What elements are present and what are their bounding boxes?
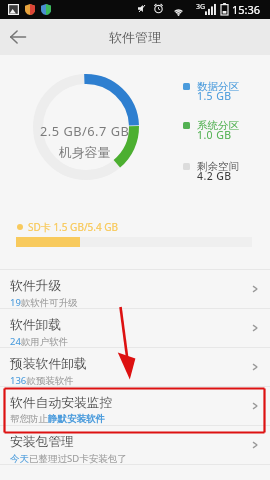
staticText: 软件管理: [109, 29, 161, 45]
button[interactable]: 安装包管理: [0, 426, 270, 464]
staticText: SD卡 1.5 GB/5.4 GB: [28, 220, 119, 234]
staticText: 帮您防止静默安装软件: [10, 413, 105, 425]
button[interactable]: 软件自动安装监控: [0, 387, 270, 425]
staticText: 24款用户软件: [10, 335, 69, 348]
staticText: 今天已整理过SD卡安装包了: [10, 452, 127, 465]
staticText: 剩余空间: [197, 160, 239, 173]
staticText: 2.5 GB/6.7 GB: [40, 122, 130, 139]
button[interactable]: 软件卸载: [0, 309, 270, 347]
staticText: 软件卸载: [10, 317, 62, 333]
staticText: 系统分区: [197, 119, 239, 132]
staticText: 3G: [196, 2, 206, 12]
staticText: 4.2 GB: [197, 169, 232, 183]
staticText: 软件升级: [10, 278, 62, 294]
button[interactable]: Back: [4, 23, 32, 51]
staticText: 136款预装软件: [10, 374, 74, 387]
staticText: 1.0 GB: [197, 128, 232, 142]
staticText: 安装包管理: [10, 434, 74, 450]
staticText: 数据分区: [197, 80, 239, 93]
staticText: 19款软件可升级: [10, 296, 78, 309]
staticText: 机身容量: [59, 145, 111, 161]
staticText: 1.5 GB: [197, 89, 232, 103]
staticText: 软件自动安装监控: [10, 395, 113, 411]
staticText: 预装软件卸载: [10, 356, 87, 372]
button[interactable]: 软件升级: [0, 270, 270, 308]
button[interactable]: 预装软件卸载: [0, 348, 270, 386]
staticText: 15:36: [232, 2, 261, 17]
